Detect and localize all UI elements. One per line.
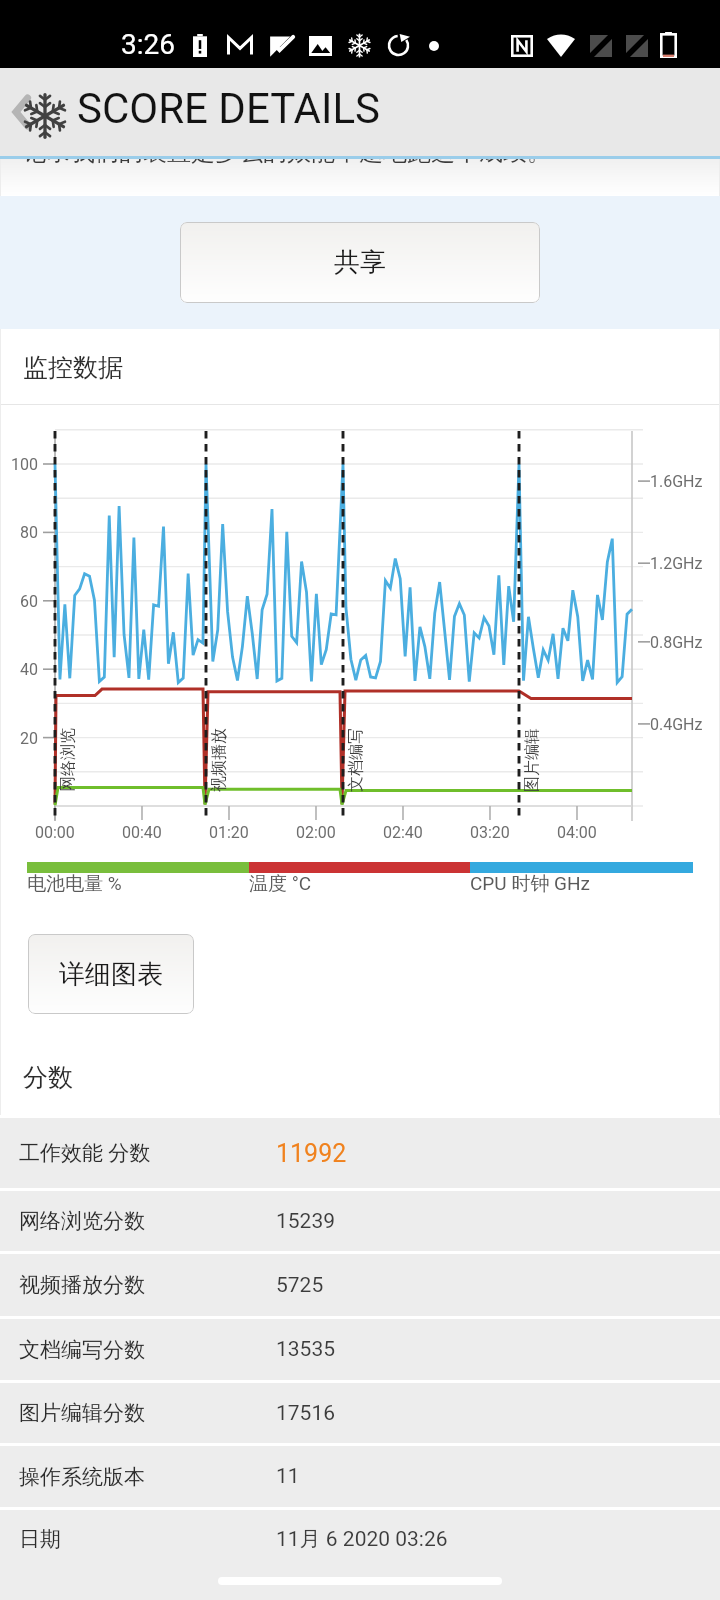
staticText: 03:20 [470, 823, 510, 842]
staticText: 视频播放 [209, 728, 229, 792]
staticText: 图片编辑 [522, 728, 542, 792]
staticText: 1.6GHz [650, 472, 703, 491]
staticText: 11 [276, 1464, 300, 1489]
staticText: 操作系统版本 [19, 1464, 145, 1490]
button[interactable]: 图片编辑分数 [0, 1383, 720, 1443]
button[interactable]: 网络浏览分数 [0, 1191, 720, 1251]
staticText: 17516 [276, 1401, 336, 1426]
staticText: 网络浏览 [58, 728, 78, 792]
staticText: 文档编写 [346, 728, 366, 792]
staticText: 02:00 [296, 823, 336, 842]
button[interactable]: 工作效能 分数 [0, 1118, 720, 1188]
staticText: 监控数据 [23, 352, 123, 383]
staticText: 图片编辑分数 [19, 1400, 145, 1426]
staticText: 01:20 [209, 823, 249, 842]
staticText: 日期 [19, 1526, 61, 1552]
staticText: 工作效能 分数 [19, 1140, 151, 1166]
staticText: 04:00 [557, 823, 597, 842]
staticText: 分数 [23, 1062, 73, 1093]
staticText: 60 [20, 592, 38, 611]
staticText: 共享 [334, 246, 386, 279]
staticText: 80 [20, 523, 38, 542]
staticText: 00:40 [122, 823, 162, 842]
staticText: 02:40 [383, 823, 423, 842]
button[interactable]: 详细图表 [28, 934, 194, 1014]
staticText: 13535 [276, 1337, 336, 1362]
staticText: 1.2GHz [650, 554, 703, 573]
staticText: 电池电量 % [27, 872, 122, 896]
staticText: 40 [20, 660, 38, 679]
button[interactable]: 文档编写分数 [0, 1319, 720, 1380]
staticText: 网络浏览分数 [19, 1208, 145, 1234]
staticText: 11992 [276, 1139, 347, 1168]
staticText: 视频播放分数 [19, 1272, 145, 1298]
staticText: 详细图表 [59, 958, 163, 991]
button[interactable]: 日期 [0, 1510, 720, 1568]
staticText: 20 [20, 729, 38, 748]
staticText: 温度 °C [249, 872, 312, 896]
button[interactable]: 操作系统版本 [0, 1446, 720, 1507]
staticText: 11月 6 2020 03:26 [276, 1526, 448, 1552]
staticText: 文档编写分数 [19, 1337, 145, 1363]
staticText: 3:26 [121, 28, 175, 61]
staticText: 100 [11, 455, 38, 474]
button[interactable]: Back [0, 90, 44, 134]
button[interactable]: 共享 [180, 222, 540, 303]
staticText: 记录我们的装置是多么的效能卓越地跑这个成绩。 [23, 159, 551, 167]
button[interactable]: 视频播放分数 [0, 1254, 720, 1316]
staticText: 15239 [276, 1209, 336, 1234]
staticText: 5725 [276, 1273, 324, 1298]
staticText: 0.4GHz [650, 715, 703, 734]
staticText: 00:00 [35, 823, 75, 842]
staticText: CPU 时钟 GHz [470, 872, 591, 896]
staticText: SCORE DETAILS [77, 84, 381, 133]
staticText: 0.8GHz [650, 633, 703, 652]
